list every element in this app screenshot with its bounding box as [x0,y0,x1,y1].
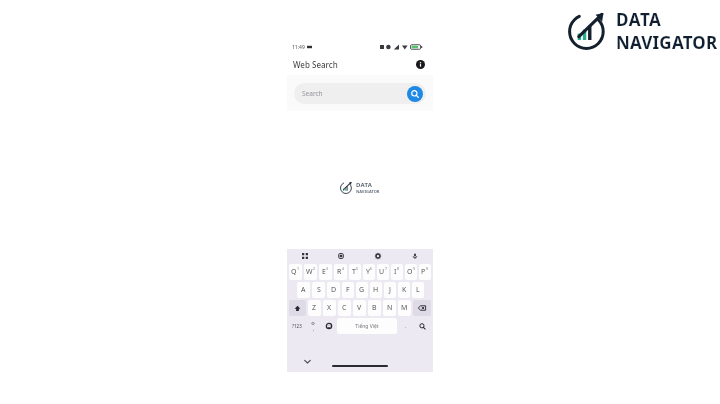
button[interactable]: Q [289,264,302,280]
staticText: E [322,267,326,277]
button[interactable]: S [312,282,325,298]
button[interactable]: Settings [359,249,396,263]
button[interactable]: L [412,282,424,298]
staticText: . [405,323,407,330]
staticText: NAVIGATOR [616,31,718,52]
button[interactable]: X [323,300,336,316]
staticText: L [416,285,420,295]
button[interactable]: B [368,300,381,316]
staticText: B [372,303,377,313]
button[interactable]: K [398,282,410,298]
button[interactable]: Hide keyboard [301,355,313,367]
button[interactable]: Search [407,86,423,102]
staticText: F [346,285,350,295]
staticText: Z [312,303,317,313]
button[interactable]: U [377,264,389,280]
staticText: G [359,285,365,295]
staticText: Y [366,267,370,277]
staticText: Search [302,89,323,98]
button[interactable]: D [327,282,340,298]
staticText: R [337,267,342,277]
button[interactable]: V [353,300,366,316]
staticText: 8 [397,266,400,271]
button[interactable]: E [319,264,332,280]
staticText: 11:49 [292,44,305,51]
button[interactable]: F [342,282,354,298]
staticText: 7 [385,266,388,271]
button[interactable]: J [384,282,396,298]
staticText: 9 [413,266,416,271]
staticText: ⚙ [311,321,316,326]
button[interactable]: Clipboard [323,249,359,263]
button[interactable] [322,318,335,334]
button[interactable]: Backspace [413,300,431,316]
button[interactable]: Apps [287,249,323,263]
button[interactable] [414,318,431,334]
staticText: A [301,285,306,295]
button[interactable]: P [419,264,431,280]
staticText: X [327,303,332,313]
staticText: 4 [342,266,345,271]
staticText: ?123 [292,323,302,329]
staticText: Q [291,267,297,277]
button[interactable]: Info [413,57,427,71]
staticText: T [352,267,356,277]
staticText: 2 [313,266,316,271]
button[interactable]: M [398,300,411,316]
button[interactable]: Shift [289,300,306,316]
button[interactable]: H [370,282,382,298]
staticText: 5 [356,266,359,271]
staticText: W [306,267,313,277]
button[interactable]: Z [308,300,321,316]
staticText: V [357,303,362,313]
staticText: K [402,285,407,295]
button[interactable]: R [334,264,347,280]
staticText: J [389,285,391,295]
staticText: H [373,285,379,295]
staticText: N [387,303,393,313]
button[interactable]: ⚙ [307,318,320,334]
staticText: DATA [616,8,662,31]
button[interactable]: O [405,264,417,280]
staticText: 6 [370,266,373,271]
staticText: U [379,267,385,277]
staticText: S [317,285,321,295]
button[interactable]: Voice input [396,249,433,263]
button[interactable]: T [349,264,361,280]
staticText: 3 [326,266,329,271]
staticText: Tiếng Việt [355,323,379,330]
button[interactable]: Tiếng Việt [337,318,397,334]
staticText: D [331,285,337,295]
button[interactable]: W [304,264,317,280]
button[interactable]: G [356,282,368,298]
staticText: 0 [426,266,429,271]
button[interactable]: Search [294,83,426,104]
staticText: P [421,267,426,277]
staticText: NAVIGATOR [356,189,380,194]
staticText: , [313,326,315,332]
staticText: Web Search [293,59,338,70]
button[interactable]: C [338,300,351,316]
button[interactable]: I [391,264,403,280]
staticText: C [342,303,347,313]
staticText: 1 [297,266,300,271]
staticText: DATA [356,181,372,189]
staticText: I [394,267,397,277]
button[interactable]: A [297,282,310,298]
button[interactable]: N [383,300,396,316]
staticText: O [407,267,413,277]
button[interactable]: . [399,318,412,334]
staticText: M [401,303,408,313]
button[interactable]: ?123 [289,318,305,334]
button[interactable]: Y [363,264,375,280]
